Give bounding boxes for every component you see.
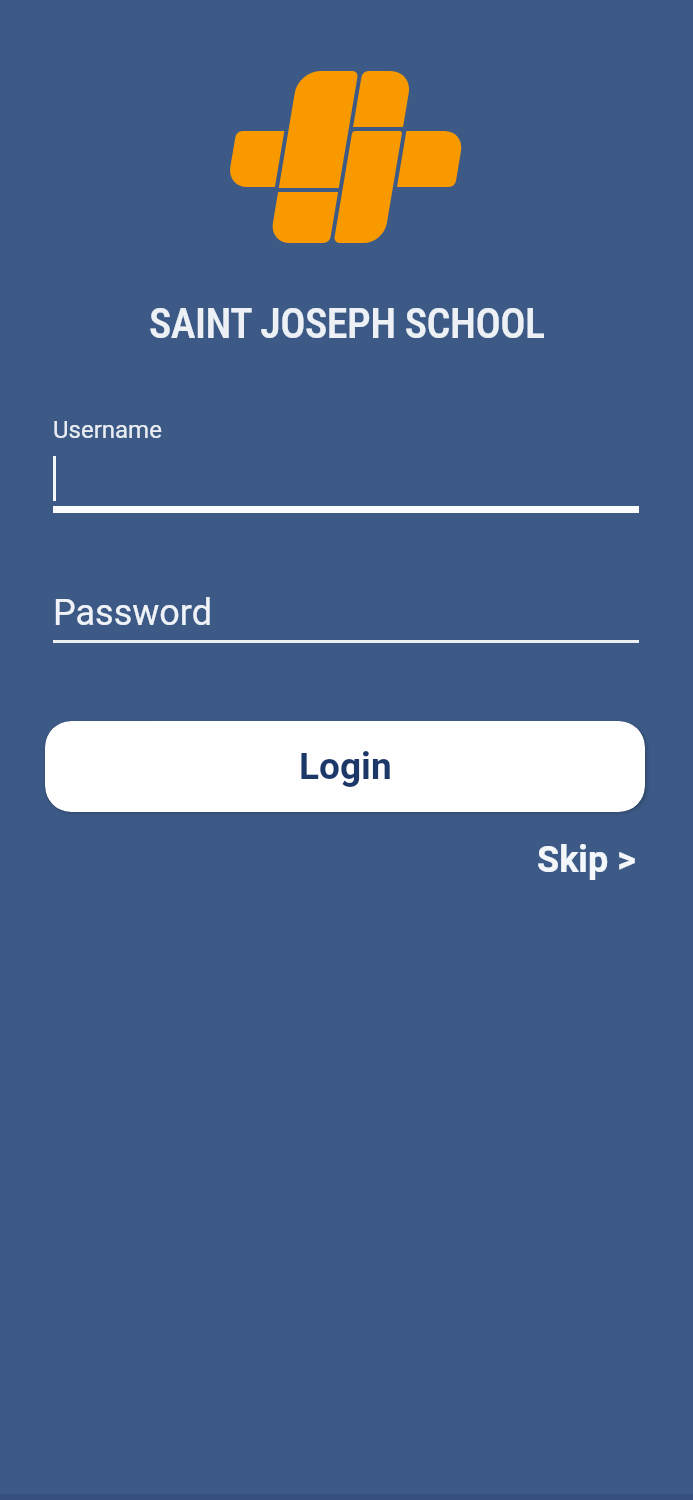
button[interactable]: Login: [45, 721, 645, 812]
button[interactable]: Password: [53, 560, 639, 643]
staticText: Username: [53, 416, 162, 444]
button[interactable]: [53, 450, 639, 513]
button[interactable]: Skip >: [537, 839, 636, 881]
staticText: Login: [299, 745, 392, 788]
staticText: SAINT JOSEPH SCHOOL: [149, 299, 545, 348]
staticText: Password: [53, 592, 213, 634]
